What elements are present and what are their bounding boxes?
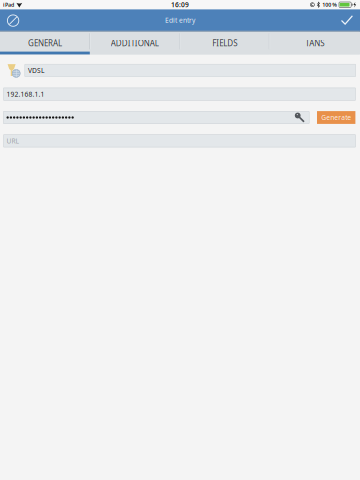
staticText: iPad [3, 1, 14, 8]
button[interactable]: Cancel [0, 9, 26, 31]
staticText: Edit entry [165, 16, 195, 25]
staticText: GENERAL [28, 38, 62, 48]
staticText: FIELDS [212, 38, 237, 48]
staticText: URL [6, 136, 18, 145]
button[interactable]: Generate [317, 111, 355, 124]
staticText: VDSL [28, 66, 44, 75]
staticText: TANS [305, 38, 324, 48]
button[interactable]: ADDITIONAL [90, 32, 180, 54]
staticText: 192.168.1.1 [6, 90, 44, 99]
button[interactable]: GENERAL [0, 32, 90, 54]
staticText: 100 % [322, 1, 337, 8]
button[interactable]: FIELDS [180, 32, 270, 54]
staticText: ADDITIONAL [111, 38, 159, 48]
staticText: 16:09 [171, 0, 189, 9]
staticText: Generate [321, 113, 351, 122]
button[interactable]: TANS [270, 32, 360, 54]
button[interactable]: Save [334, 9, 360, 31]
